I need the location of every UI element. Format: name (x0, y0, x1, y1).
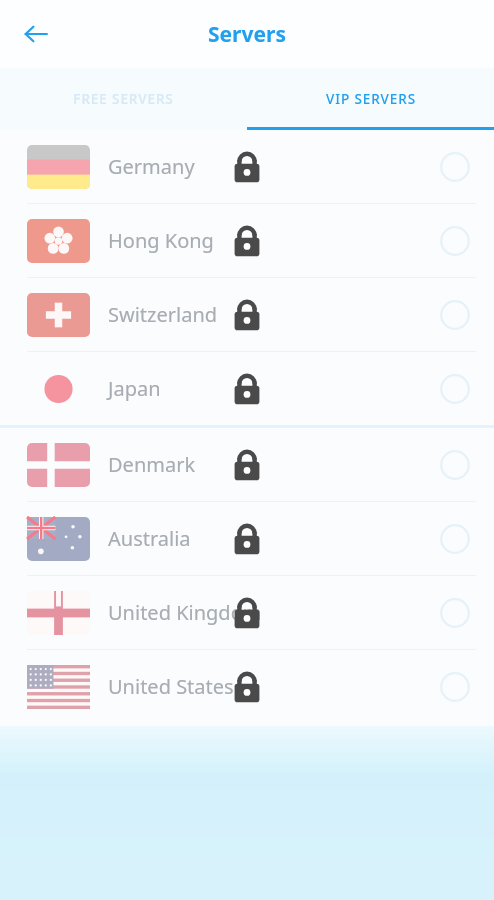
button[interactable]: Australia (0, 502, 494, 575)
button[interactable]: United States (0, 650, 494, 723)
staticText: United Kingdom (108, 599, 262, 626)
staticText: Servers (208, 20, 286, 49)
staticText: Germany (108, 153, 195, 180)
button[interactable]: Switzerland (0, 278, 494, 351)
staticText: Hong Kong (108, 227, 214, 254)
staticText: Denmark (108, 451, 196, 478)
button[interactable]: Japan (0, 352, 494, 425)
button[interactable]: Denmark (0, 428, 494, 501)
staticText: FREE SERVERS (73, 90, 174, 108)
button[interactable]: United Kingdom (0, 576, 494, 649)
button[interactable]: Back (12, 10, 60, 58)
staticText: VIP SERVERS (326, 90, 416, 108)
button[interactable]: Hong Kong (0, 204, 494, 277)
staticText: United States (108, 673, 234, 700)
staticText: Switzerland (108, 301, 218, 328)
staticText: Australia (108, 525, 191, 552)
button[interactable]: FREE SERVERS (0, 68, 247, 130)
button[interactable]: VIP SERVERS (247, 68, 494, 130)
staticText: Japan (108, 375, 161, 402)
button[interactable]: Germany (0, 130, 494, 203)
